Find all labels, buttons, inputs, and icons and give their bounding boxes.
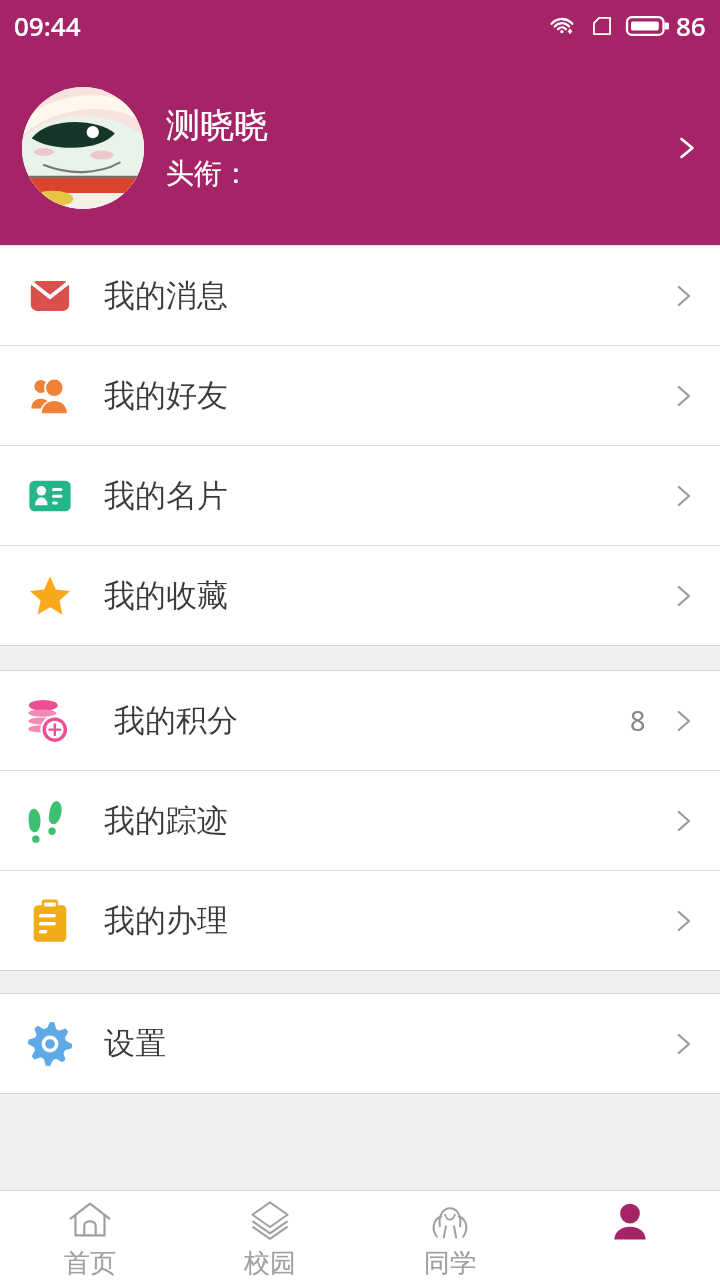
staticText: 我的好友 bbox=[104, 376, 228, 415]
staticText: 我的积分 bbox=[114, 701, 238, 740]
staticText: 我的办理 bbox=[104, 901, 228, 940]
staticText: 我的消息 bbox=[104, 276, 228, 315]
button[interactable]: 首页 bbox=[0, 1191, 180, 1280]
staticText: 86 bbox=[676, 8, 706, 43]
staticText: 我的踪迹 bbox=[104, 801, 228, 840]
button[interactable]: 我的踪迹 bbox=[0, 771, 720, 870]
button[interactable]: 我的办理 bbox=[0, 871, 720, 970]
staticText: 校园 bbox=[244, 1247, 296, 1280]
button[interactable]: 我的好友 bbox=[0, 346, 720, 445]
button[interactable]: 我的消息 bbox=[0, 246, 720, 345]
button[interactable]: 同学 bbox=[360, 1191, 540, 1280]
button[interactable]: 我的名片 bbox=[0, 446, 720, 545]
staticText: 我的收藏 bbox=[104, 576, 228, 615]
staticText: 同学 bbox=[424, 1247, 476, 1280]
button[interactable]: 设置 bbox=[0, 994, 720, 1093]
staticText: 测晓晓 bbox=[166, 104, 268, 147]
button[interactable]: 我的积分 bbox=[0, 671, 720, 770]
button[interactable]: My profile bbox=[540, 1191, 720, 1280]
other: Profile details bbox=[670, 132, 702, 164]
staticText: 首页 bbox=[64, 1247, 116, 1280]
staticText: 我的名片 bbox=[104, 476, 228, 515]
button[interactable]: 我的收藏 bbox=[0, 546, 720, 645]
staticText: 8 bbox=[630, 702, 646, 739]
staticText: 09:44 bbox=[14, 8, 81, 43]
button[interactable]: 校园 bbox=[180, 1191, 360, 1280]
staticText: 设置 bbox=[104, 1024, 166, 1063]
button[interactable]: 测晓晓 bbox=[0, 50, 720, 245]
staticText: 头衔： bbox=[166, 156, 250, 191]
